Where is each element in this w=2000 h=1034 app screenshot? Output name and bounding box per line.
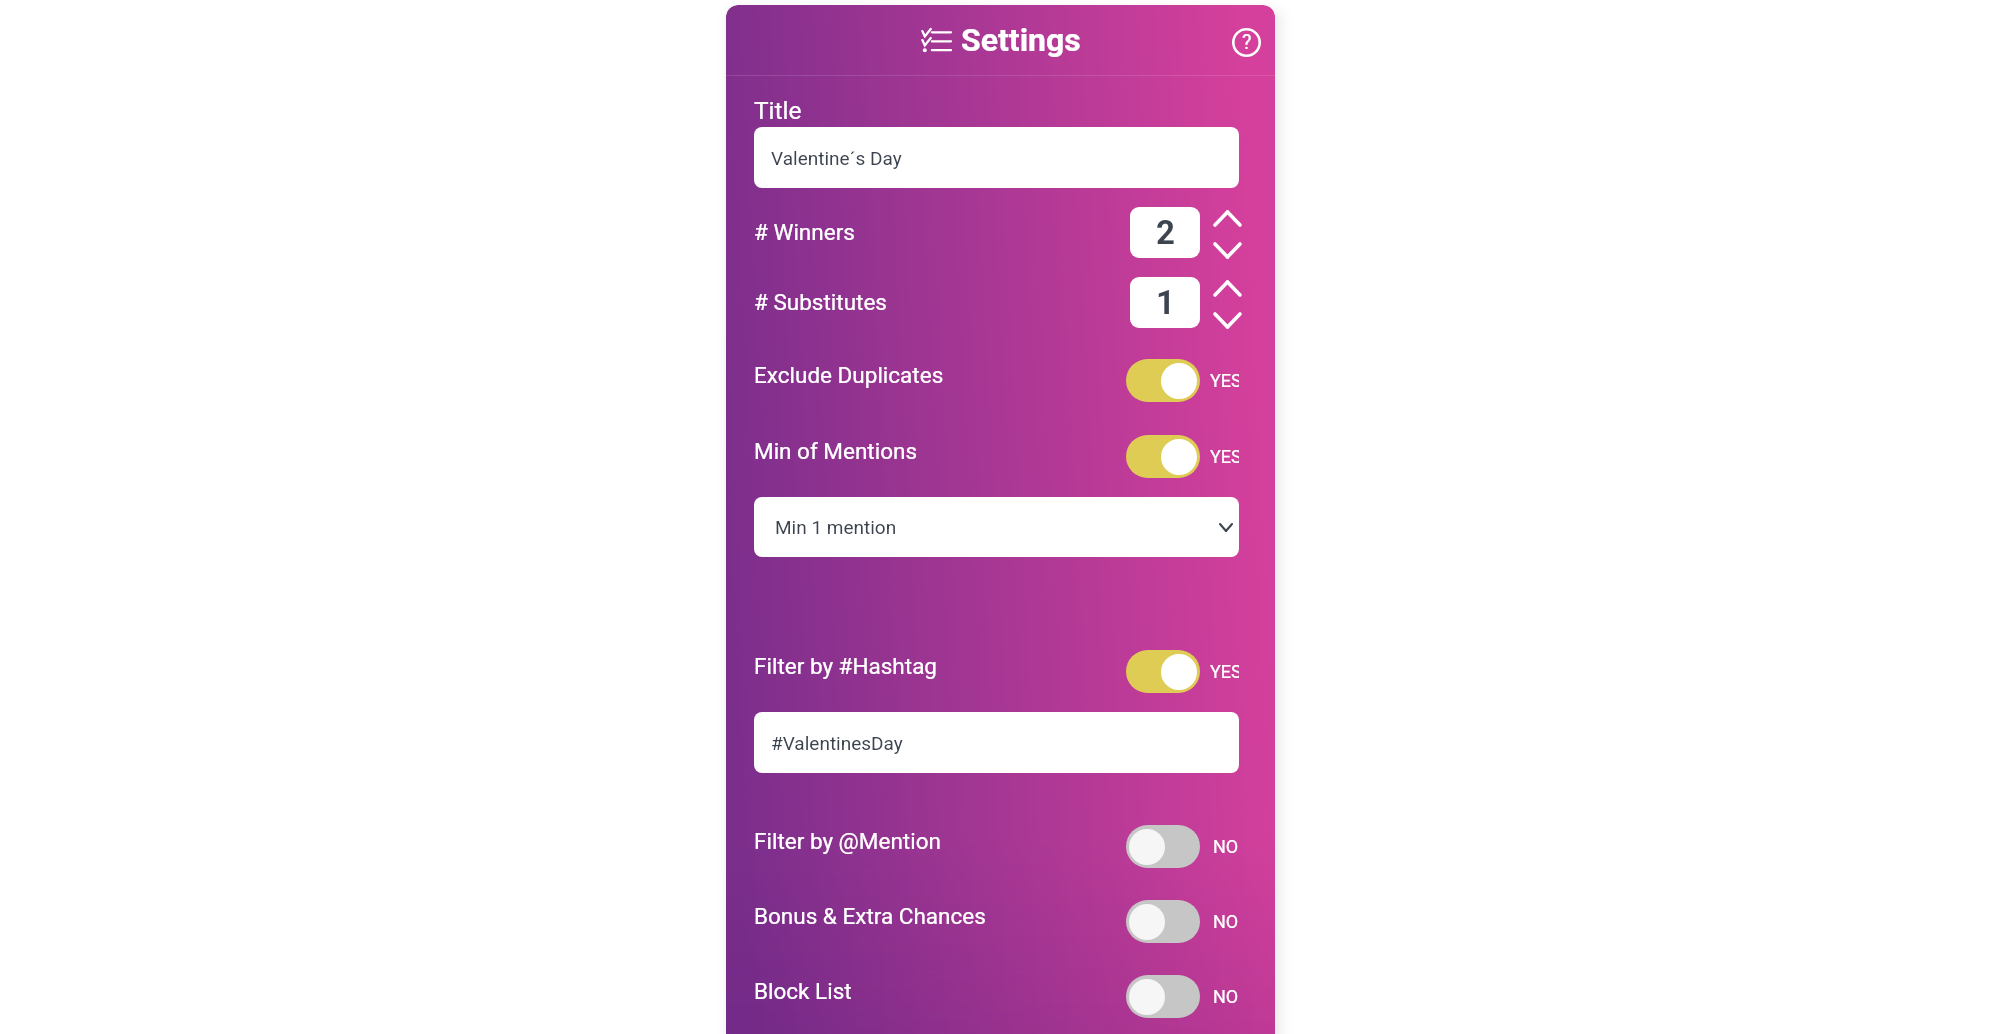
button[interactable]: Decrease # Substitutes <box>1212 306 1243 334</box>
button[interactable]: Filter by #Hashtag <box>726 650 1275 693</box>
staticText: 1 <box>1156 283 1175 322</box>
staticText: NO <box>1213 836 1239 857</box>
button[interactable]: Min 1 mention <box>754 497 1239 557</box>
button[interactable]: Bonus & Extra Chances <box>726 900 1275 943</box>
button[interactable]: Exclude Duplicates <box>726 359 1275 402</box>
staticText: Settings <box>961 21 1081 59</box>
staticText: Filter by #Hashtag <box>754 653 937 679</box>
staticText: Min 1 mention <box>775 516 897 538</box>
staticText: NO <box>1213 986 1239 1007</box>
button[interactable]: Block List <box>726 975 1275 1018</box>
staticText: YES <box>1210 446 1239 467</box>
staticText: Bonus & Extra Chances <box>754 903 986 929</box>
staticText: YES <box>1210 370 1239 391</box>
staticText: # Winners <box>754 219 855 245</box>
button[interactable]: 2 <box>1130 207 1200 258</box>
staticText: Block List <box>754 978 852 1004</box>
button[interactable]: Filter by @Mention <box>726 825 1275 868</box>
staticText: 2 <box>1156 213 1175 252</box>
button[interactable]: Min of Mentions <box>726 435 1275 478</box>
button[interactable]: Increase # Winners <box>1212 204 1243 232</box>
button[interactable]: #ValentinesDay <box>754 712 1239 773</box>
staticText: Valentine´s Day <box>771 147 902 169</box>
staticText: Title <box>754 96 802 125</box>
button[interactable]: Increase # Substitutes <box>1212 274 1243 302</box>
staticText: Min of Mentions <box>754 438 918 464</box>
button[interactable]: Help <box>1226 22 1266 62</box>
staticText: ? <box>1242 30 1252 53</box>
button[interactable]: Decrease # Winners <box>1212 236 1243 264</box>
button[interactable]: Valentine´s Day <box>754 127 1239 188</box>
staticText: Exclude Duplicates <box>754 362 944 388</box>
button[interactable]: 1 <box>1130 277 1200 328</box>
staticText: # Substitutes <box>754 289 887 315</box>
staticText: YES <box>1210 661 1239 682</box>
staticText: Filter by @Mention <box>754 828 941 854</box>
staticText: #ValentinesDay <box>771 732 903 754</box>
staticText: NO <box>1213 911 1239 932</box>
